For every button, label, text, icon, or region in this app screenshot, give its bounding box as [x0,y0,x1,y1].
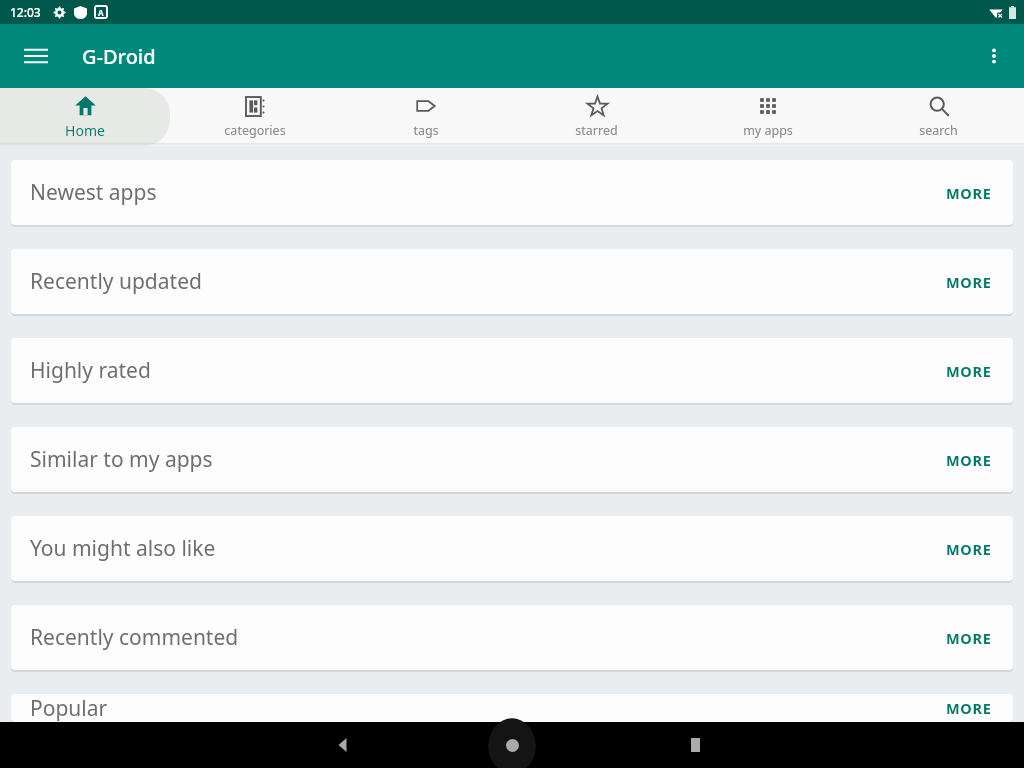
staticText: Highly rated [30,356,151,385]
button[interactable]: Recent apps [672,722,718,768]
button[interactable]: MORE [942,268,996,296]
button[interactable]: search [853,88,1024,146]
button[interactable]: MORE [942,694,996,722]
button[interactable]: my apps [682,88,853,146]
staticText: Newest apps [30,178,157,207]
button[interactable]: You might also like [11,516,1013,581]
button[interactable]: MORE [942,624,996,652]
button[interactable]: MORE [942,535,996,563]
button[interactable]: More options [974,36,1014,76]
button[interactable]: Popular [11,694,1013,722]
staticText: MORE [946,361,992,381]
button[interactable]: categories [170,88,340,146]
button[interactable]: Back [320,722,366,768]
staticText: You might also like [30,534,216,563]
staticText: categories [224,122,286,139]
staticText: MORE [946,698,992,718]
button[interactable]: Recently commented [11,605,1013,670]
staticText: Recently updated [30,267,202,296]
staticText: my apps [743,122,793,139]
staticText: MORE [946,450,992,470]
staticText: A [98,7,104,18]
button[interactable]: Home [0,88,170,146]
staticText: Similar to my apps [30,445,213,474]
staticText: MORE [946,628,992,648]
button[interactable]: MORE [942,446,996,474]
staticText: MORE [946,272,992,292]
staticText: G-Droid [82,43,156,70]
button[interactable]: starred [511,88,682,146]
staticText: 12:03 [10,4,41,20]
button[interactable]: MORE [942,357,996,385]
button[interactable]: Newest apps [11,160,1013,225]
button[interactable]: Open navigation menu [16,36,56,76]
staticText: search [919,122,958,139]
staticText: starred [575,122,618,139]
button[interactable]: Home [478,722,546,768]
staticText: tags [413,122,439,139]
staticText: MORE [946,183,992,203]
staticText: Recently commented [30,623,239,652]
button[interactable]: tags [340,88,511,146]
staticText: MORE [946,539,992,559]
button[interactable]: Recently updated [11,249,1013,314]
button[interactable]: Highly rated [11,338,1013,403]
button[interactable]: Similar to my apps [11,427,1013,492]
staticText: Home [65,121,105,140]
button[interactable]: MORE [942,179,996,207]
staticText: Popular [30,694,108,722]
